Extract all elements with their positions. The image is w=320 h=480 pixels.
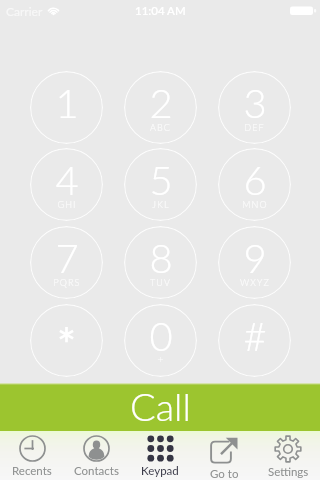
button[interactable]: Go to [192, 431, 256, 480]
other: Go to [209, 435, 239, 465]
button[interactable]: Call [0, 383, 320, 431]
staticText: Keypad [141, 464, 179, 478]
button[interactable]: 7 [30, 226, 103, 299]
other: Keypad [147, 435, 174, 462]
button[interactable]: Contacts [64, 431, 128, 480]
staticText: Carrier [6, 4, 43, 18]
button[interactable]: 2 [124, 71, 197, 144]
staticText: 2 [149, 79, 173, 127]
staticText: 5 [149, 156, 173, 204]
staticText: 9 [243, 234, 267, 282]
staticText: 0 [149, 312, 173, 360]
staticText: 4 [55, 156, 79, 204]
staticText: ABC [150, 122, 171, 133]
button[interactable]: Keypad [128, 431, 192, 480]
button[interactable]: 3 [218, 71, 291, 144]
staticText: WXYZ [240, 277, 270, 288]
button[interactable]: 4 [30, 148, 103, 221]
button[interactable]: 5 [124, 148, 197, 221]
other: Settings [274, 435, 302, 463]
staticText: GHI [57, 199, 77, 210]
staticText: 8 [149, 234, 173, 282]
button[interactable]: # [218, 304, 291, 377]
staticText: 1 [55, 79, 79, 127]
staticText: PQRS [53, 277, 81, 288]
staticText: JKL [152, 199, 170, 210]
button[interactable]: 9 [218, 226, 291, 299]
staticText: Call [130, 383, 191, 429]
other: Recents [19, 435, 46, 462]
staticText: 11:04 AM [135, 4, 186, 18]
button[interactable]: 6 [218, 148, 291, 221]
staticText: Go to [210, 467, 239, 480]
staticText: MNO [242, 199, 268, 210]
staticText: Contacts [74, 464, 119, 478]
staticText: Recents [12, 464, 52, 478]
staticText: TUV [150, 277, 171, 288]
staticText: 6 [243, 156, 267, 204]
button[interactable] [30, 304, 103, 377]
staticText: 7 [55, 234, 79, 282]
staticText: # [243, 312, 267, 360]
staticText: 3 [243, 79, 267, 127]
button[interactable]: Recents [0, 431, 64, 480]
staticText: Settings [268, 465, 309, 479]
other: Contacts [83, 435, 110, 462]
button[interactable]: 0 [124, 304, 197, 377]
button[interactable]: 1 [30, 71, 103, 144]
staticText: DEF [244, 122, 265, 133]
button[interactable]: Settings [256, 431, 320, 480]
button[interactable]: 8 [124, 226, 197, 299]
